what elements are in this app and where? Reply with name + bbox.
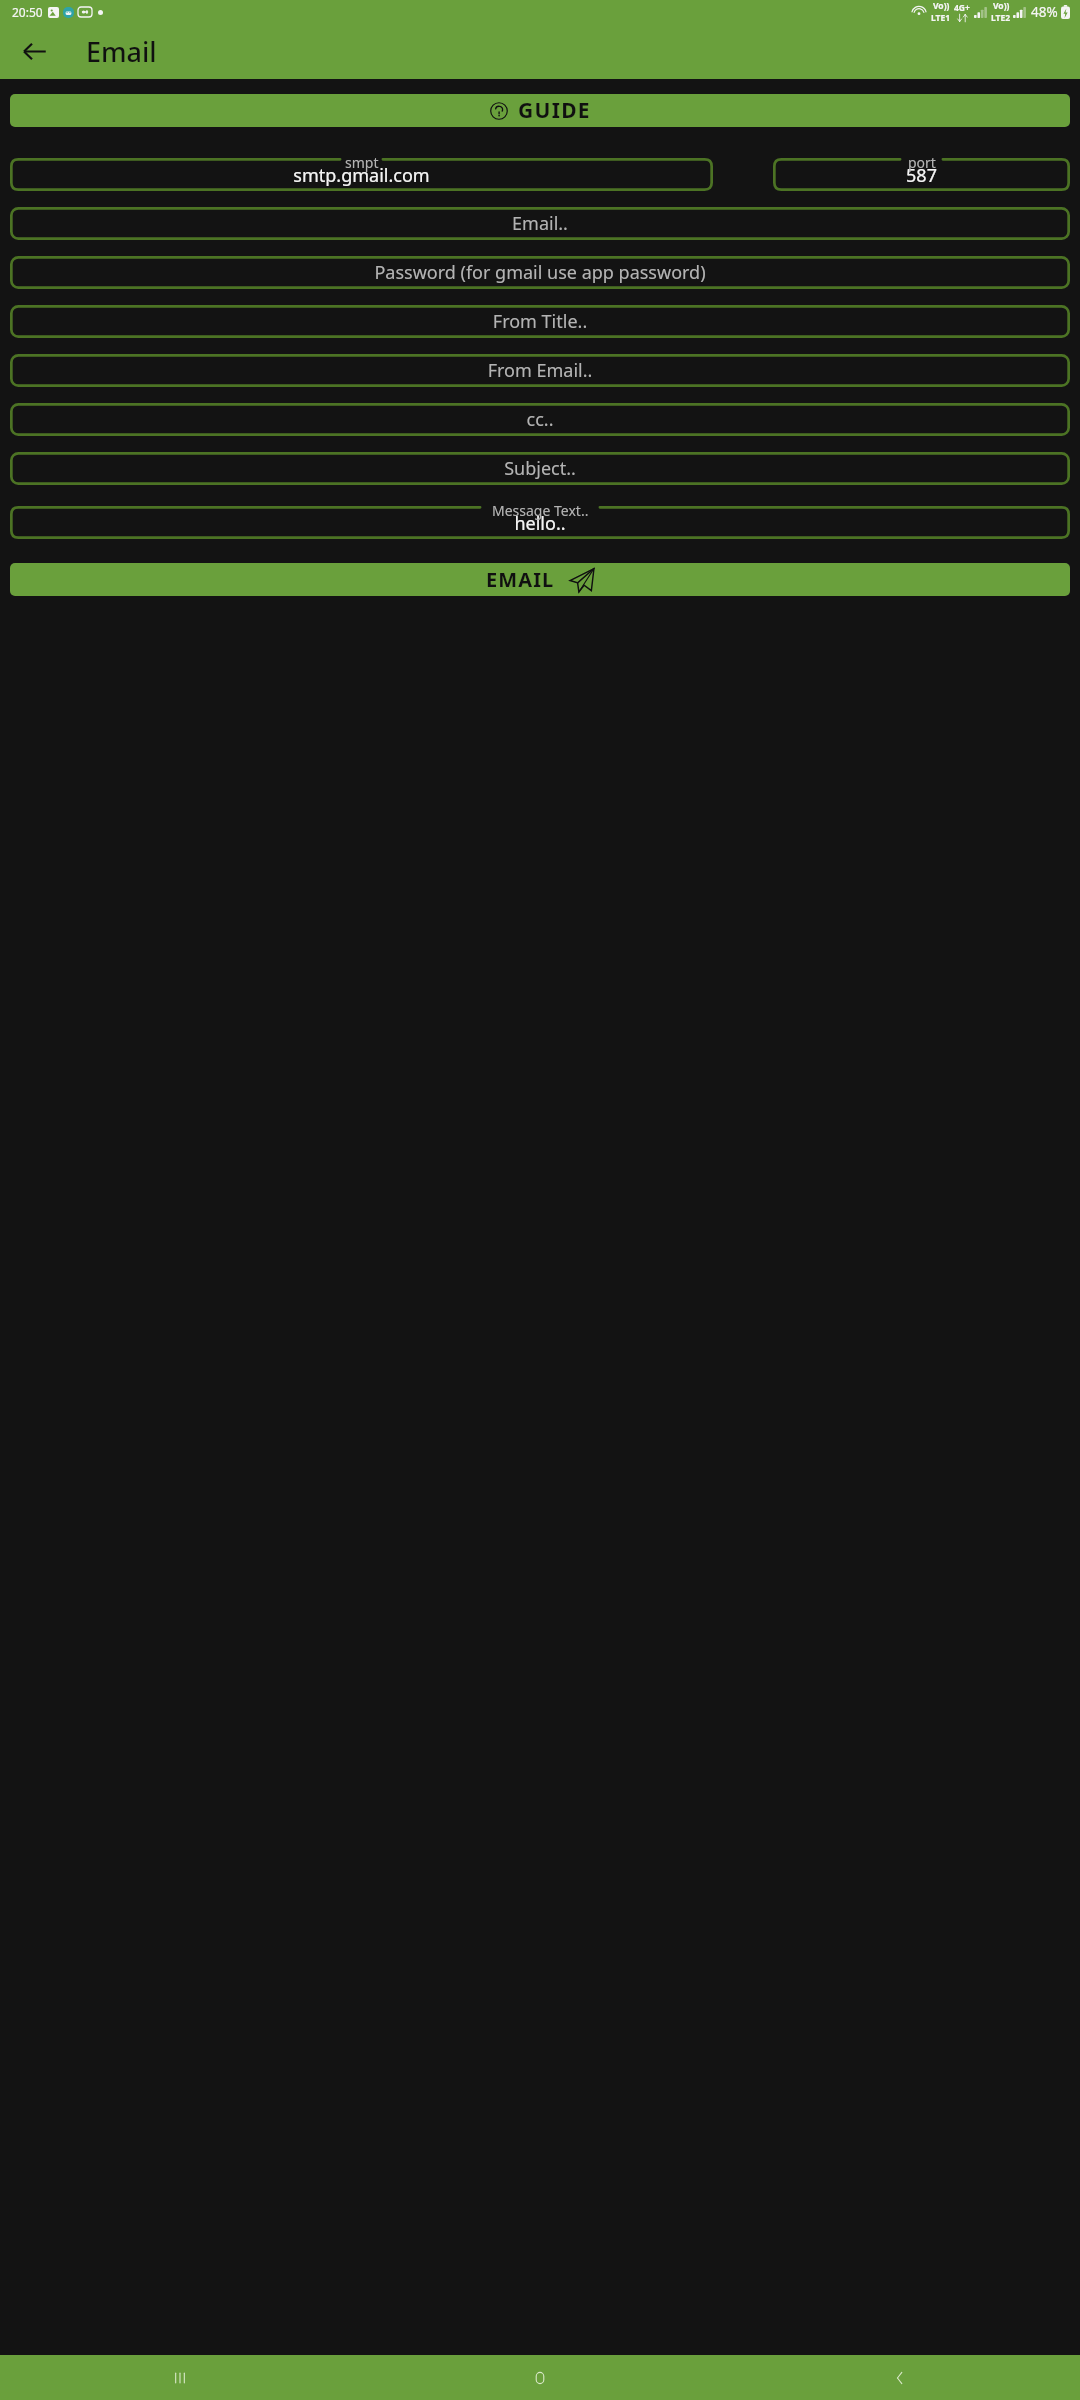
staticText: GUIDE: [518, 96, 591, 125]
staticText: 20:50: [12, 4, 43, 20]
staticText: From Title..: [16, 309, 1064, 334]
button[interactable]: hello..: [10, 501, 1070, 539]
button[interactable]: 587: [773, 153, 1070, 191]
button[interactable]: From Title..: [10, 305, 1070, 338]
button[interactable]: Back: [10, 27, 58, 75]
staticText: Email: [86, 33, 157, 70]
staticText: Message Text..: [492, 501, 589, 520]
staticText: smpt: [345, 153, 379, 172]
button[interactable]: EMAIL: [10, 563, 1070, 596]
staticText: cc..: [16, 407, 1064, 432]
button[interactable]: Password (for gmail use app password): [10, 256, 1070, 289]
button[interactable]: Home: [360, 2355, 720, 2400]
staticText: Subject..: [16, 456, 1064, 481]
staticText: Vo)): [933, 0, 950, 12]
button[interactable]: GUIDE: [10, 94, 1070, 127]
staticText: EMAIL: [486, 566, 555, 593]
button[interactable]: smtp.gmail.com: [10, 153, 713, 191]
button[interactable]: Email..: [10, 207, 1070, 240]
staticText: hello..: [16, 511, 1064, 536]
staticText: Vo)): [993, 0, 1010, 12]
staticText: Email..: [16, 211, 1064, 236]
staticText: 4G+: [954, 2, 970, 14]
staticText: smtp.gmail.com: [16, 163, 707, 188]
button[interactable]: Recents: [0, 2355, 360, 2400]
staticText: port: [908, 153, 936, 172]
staticText: Password (for gmail use app password): [16, 260, 1064, 285]
staticText: LTE1: [931, 12, 951, 23]
staticText: LTE2: [991, 12, 1011, 23]
button[interactable]: From Email..: [10, 354, 1070, 387]
button[interactable]: Subject..: [10, 452, 1070, 485]
staticText: 587: [779, 163, 1064, 188]
staticText: 48%: [1031, 3, 1058, 21]
button[interactable]: cc..: [10, 403, 1070, 436]
button[interactable]: Back: [720, 2355, 1080, 2400]
staticText: From Email..: [16, 358, 1064, 383]
